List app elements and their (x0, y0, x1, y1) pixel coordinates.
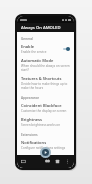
staticText: Extensions (21, 133, 38, 137)
staticText: Automatic Mode (21, 58, 54, 63)
staticText: When should the always on screen start? (21, 64, 70, 72)
button[interactable]: Always On AMOLED (17, 23, 74, 32)
staticText: Coincident Blackface (21, 103, 62, 108)
staticText: Notifications (21, 140, 47, 145)
staticText: Screen brightness works on (21, 123, 61, 127)
button[interactable]: Themes (54, 158, 61, 165)
staticText: Always On AMOLED (21, 25, 61, 31)
staticText: Textures & Shortcuts (21, 76, 62, 81)
staticText: Customize the display on screen (21, 109, 67, 113)
button[interactable]: Menu (20, 158, 27, 165)
button[interactable]: Automatic Mode (21, 56, 70, 74)
button[interactable]: Play (40, 147, 51, 158)
button[interactable]: Ambient Display & Raise To Wake (21, 152, 70, 168)
button[interactable]: Brightness (21, 115, 70, 129)
staticText: Decide how to make things up to make the… (21, 82, 70, 90)
staticText: Find your favorite ones and select from … (21, 160, 70, 166)
other: Enable toggle (63, 47, 70, 51)
button[interactable]: Coincident Blackface (21, 101, 70, 115)
button[interactable]: Notifications (21, 138, 70, 152)
staticText: Brightness (21, 117, 43, 122)
button[interactable]: Textures & Shortcuts (21, 74, 70, 92)
staticText: Appearance (21, 96, 40, 100)
button[interactable]: Enable (21, 42, 70, 56)
staticText: Configure notifications settings (21, 146, 66, 150)
staticText: Ambient Display & Raise To Wake (21, 154, 70, 159)
staticText: Enable (21, 44, 35, 49)
staticText: General (21, 37, 33, 41)
button[interactable]: More options (64, 158, 71, 165)
button[interactable]: Favorites (44, 158, 51, 165)
staticText: Enable the service (21, 50, 47, 54)
